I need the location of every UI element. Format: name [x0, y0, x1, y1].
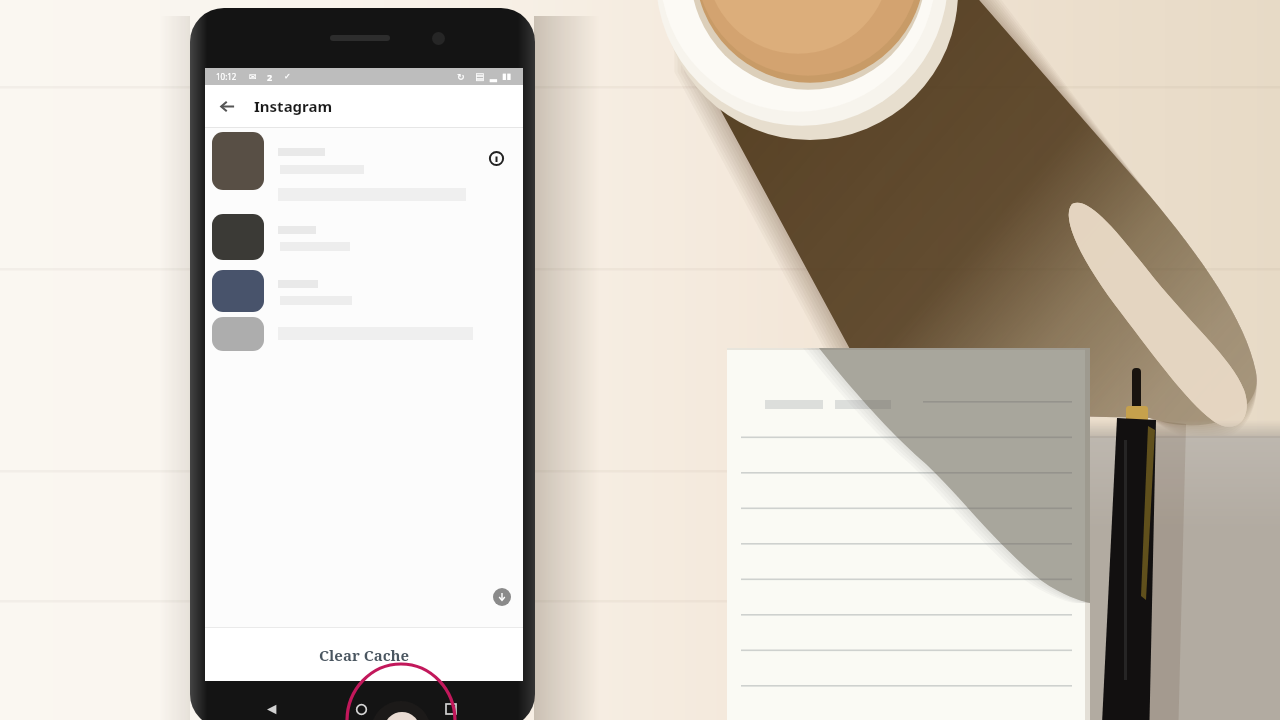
- staticText: Instagram: [254, 96, 333, 116]
- button[interactable]: Back: [212, 91, 242, 121]
- staticText: Clear Cache: [319, 645, 410, 665]
- staticText: 2: [267, 71, 273, 83]
- button[interactable]: [205, 214, 523, 268]
- staticText: ↻: [457, 72, 465, 82]
- button[interactable]: [205, 317, 523, 359]
- button[interactable]: Download: [493, 588, 511, 606]
- staticText: ▮▮: [502, 72, 511, 81]
- button[interactable]: Recents: [437, 695, 465, 720]
- button[interactable]: Back: [258, 695, 286, 720]
- staticText: ✓: [284, 72, 291, 81]
- staticText: ▤: [475, 71, 485, 83]
- staticText: ✉: [249, 72, 257, 82]
- button[interactable]: Clear Cache: [205, 628, 523, 681]
- staticText: ▂: [490, 72, 497, 82]
- staticText: 10:12: [216, 71, 237, 82]
- button[interactable]: Info: [486, 148, 506, 168]
- button[interactable]: Home: [347, 695, 375, 720]
- button[interactable]: Info: [205, 132, 523, 202]
- button[interactable]: Home button: [384, 712, 420, 720]
- button[interactable]: [205, 270, 523, 320]
